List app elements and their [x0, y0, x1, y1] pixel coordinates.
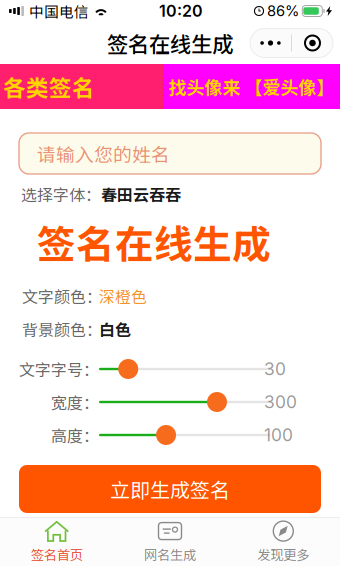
staticText: 高度：: [51, 423, 99, 447]
staticText: 签名在线生成: [37, 214, 271, 270]
staticText: 30: [264, 358, 286, 379]
button[interactable]: 春田云吞吞: [101, 182, 181, 206]
button[interactable]: 找头像来 【爱头像】: [163, 64, 340, 109]
staticText: 各类签名: [3, 70, 95, 103]
staticText: 找头像来 【爱头像】: [168, 73, 334, 100]
button[interactable]: 发现更多: [227, 518, 340, 566]
staticText: 文字字号：: [19, 357, 99, 381]
button[interactable]: 网名生成: [113, 518, 227, 566]
button[interactable]: 白色: [99, 317, 131, 341]
staticText: 100: [264, 424, 293, 445]
button[interactable]: 立即生成签名: [19, 465, 321, 513]
staticText: 立即生成签名: [110, 474, 230, 503]
staticText: 春田云吞吞: [101, 182, 181, 206]
staticText: 白色: [99, 317, 131, 341]
staticText: 深橙色: [99, 284, 147, 308]
button[interactable]: 深橙色: [99, 284, 147, 308]
staticText: 300: [264, 391, 297, 412]
staticText: 86%: [267, 2, 299, 20]
staticText: 请输入您的姓名: [37, 140, 170, 167]
staticText: 文字颜色：: [22, 284, 102, 308]
staticText: 网名生成: [144, 545, 196, 564]
staticText: 中国电信: [29, 0, 89, 22]
staticText: 背景颜色：: [22, 317, 102, 341]
staticText: 发现更多: [257, 545, 309, 564]
button[interactable]: 签名首页: [0, 518, 113, 566]
button[interactable]: Slider handle: [118, 359, 138, 379]
button[interactable]: Slider handle: [156, 425, 176, 445]
button[interactable]: Slider handle: [207, 392, 227, 412]
button[interactable]: 请输入您的姓名: [19, 133, 321, 174]
staticText: 签名在线生成: [107, 28, 233, 58]
staticText: 宽度：: [51, 390, 99, 414]
button[interactable]: 各类签名: [0, 64, 163, 109]
staticText: 10:20: [159, 1, 203, 21]
button[interactable]: More options: [250, 28, 333, 57]
staticText: 签名首页: [31, 545, 83, 564]
staticText: 选择字体：: [21, 182, 101, 206]
